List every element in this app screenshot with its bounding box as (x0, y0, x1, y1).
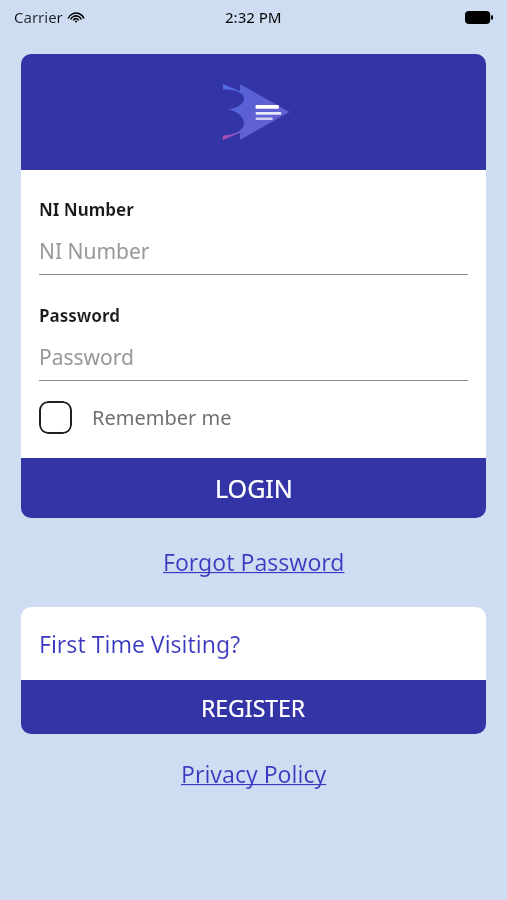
other: Target Technology Solutions logo (215, 77, 293, 147)
staticText: Carrier (14, 7, 63, 27)
staticText: First Time Visiting? (39, 628, 241, 659)
staticText: NI Number (39, 198, 134, 221)
staticText: NI Number (39, 237, 150, 266)
staticText: Privacy Policy (181, 758, 327, 789)
staticText: REGISTER (201, 692, 306, 723)
staticText: LOGIN (215, 471, 293, 505)
button[interactable]: Forgot Password (157, 540, 351, 583)
button[interactable]: LOGIN (21, 458, 486, 518)
staticText: Password (39, 343, 134, 372)
staticText: Remember me (92, 404, 232, 431)
button[interactable]: NI Number (39, 237, 468, 266)
button[interactable]: Password (39, 343, 468, 372)
staticText: Password (39, 304, 120, 327)
button[interactable]: Remember me (39, 401, 232, 434)
staticText: 2:32 PM (225, 7, 282, 27)
staticText: Forgot Password (163, 546, 345, 577)
button[interactable]: Privacy Policy (175, 752, 333, 795)
button[interactable]: REGISTER (21, 680, 486, 734)
